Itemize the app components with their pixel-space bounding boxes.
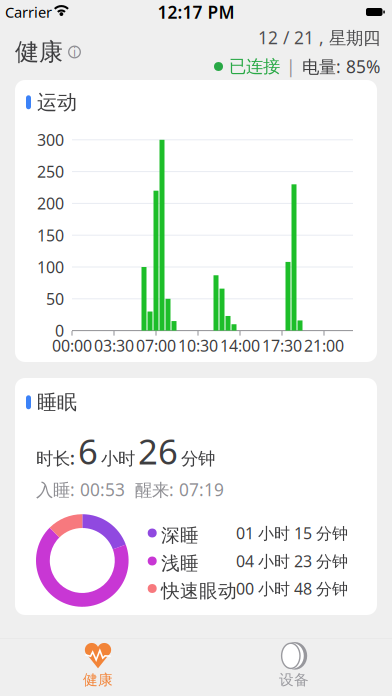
staticText: 03:30 — [94, 335, 134, 356]
staticText: 深睡 — [161, 524, 199, 547]
staticText: 26 — [138, 428, 178, 474]
staticText: 入睡: 00:53 — [36, 478, 125, 501]
staticText: 01 小时 15 分钟 — [236, 522, 348, 544]
staticText: 浅睡 — [161, 552, 199, 575]
staticText: 6 — [78, 428, 98, 474]
staticText: 健康 — [83, 671, 113, 689]
staticText: Carrier — [5, 2, 52, 22]
staticText: 电量: 85% — [302, 55, 380, 78]
staticText: | — [286, 55, 296, 78]
staticText: 200 — [37, 193, 64, 214]
staticText: 00 小时 48 分钟 — [236, 578, 348, 599]
staticText: 设备 — [279, 671, 309, 689]
staticText: 分钟 — [181, 448, 215, 469]
staticText: i — [73, 44, 76, 60]
staticText: 睡眠 — [37, 390, 77, 415]
staticText: 10:30 — [178, 335, 218, 356]
button[interactable]: 设备 — [196, 639, 392, 689]
staticText: 50 — [46, 288, 64, 309]
staticText: 250 — [37, 161, 64, 182]
staticText: 健康 — [15, 37, 63, 67]
staticText: 已连接 — [229, 56, 280, 77]
staticText: 12:17 PM — [157, 0, 234, 23]
staticText: 小时 — [101, 448, 135, 469]
staticText: 运动 — [37, 90, 77, 115]
staticText: 100 — [37, 256, 64, 278]
staticText: 21:00 — [304, 335, 344, 356]
button[interactable]: 健康 — [0, 639, 196, 689]
staticText: 醒来: 07:19 — [135, 478, 224, 501]
staticText: 150 — [37, 225, 64, 246]
staticText: 时长: — [36, 446, 75, 469]
staticText: 0 — [55, 320, 64, 341]
staticText: 04 小时 23 分钟 — [236, 550, 348, 572]
staticText: 17:30 — [262, 335, 302, 356]
staticText: 快速眼动 — [161, 579, 237, 602]
staticText: 12 / 21 , 星期四 — [258, 26, 380, 49]
staticText: 00:00 — [52, 335, 92, 356]
staticText: 14:00 — [220, 335, 260, 356]
staticText: 300 — [37, 129, 64, 150]
button[interactable]: 关于健康数据 — [68, 44, 81, 60]
staticText: 07:00 — [136, 335, 176, 356]
